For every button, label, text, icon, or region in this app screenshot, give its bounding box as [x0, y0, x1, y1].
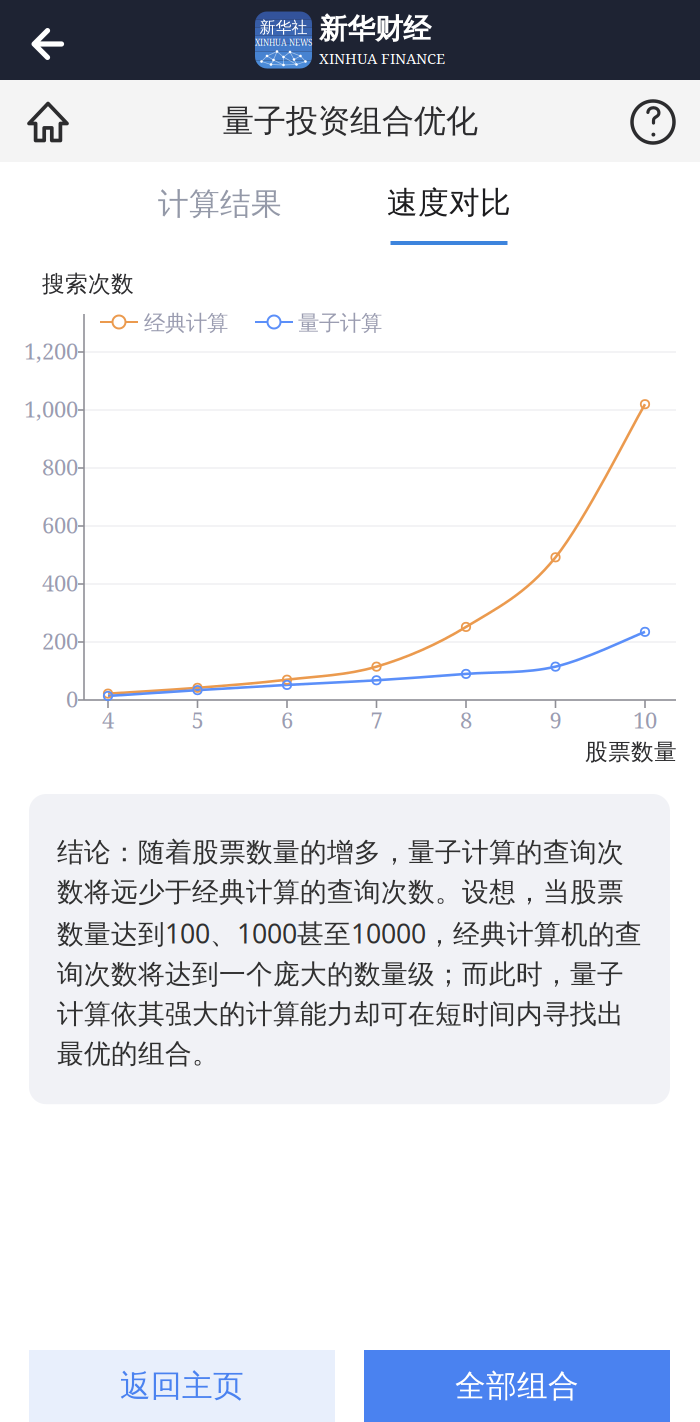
- button[interactable]: 速度对比: [334, 162, 564, 262]
- staticText: 7: [370, 705, 382, 735]
- button[interactable]: 返回主页: [29, 1350, 335, 1422]
- staticText: 600: [42, 510, 78, 540]
- button[interactable]: Help: [604, 80, 700, 162]
- staticText: 全部组合: [455, 1367, 579, 1405]
- staticText: 股票数量: [585, 738, 677, 766]
- staticText: 量子计算: [298, 310, 382, 336]
- staticText: XINHUA FINANCE: [319, 48, 445, 68]
- staticText: 1,000: [24, 394, 78, 424]
- staticText: 计算结果: [158, 185, 282, 223]
- button[interactable]: 全部组合: [364, 1350, 670, 1422]
- button[interactable]: Back: [0, 0, 96, 80]
- staticText: 新华社: [259, 17, 307, 37]
- staticText: 1,200: [24, 336, 78, 366]
- staticText: 400: [42, 568, 78, 598]
- staticText: 经典计算: [144, 310, 228, 336]
- staticText: 800: [42, 452, 78, 482]
- staticText: XINHUA NEWS: [255, 37, 312, 48]
- staticText: 速度对比: [387, 184, 511, 222]
- staticText: 0: [66, 684, 78, 714]
- staticText: 8: [460, 705, 472, 735]
- staticText: 5: [191, 705, 203, 735]
- staticText: 新华财经: [319, 12, 431, 46]
- button[interactable]: 计算结果: [105, 162, 335, 262]
- staticText: 9: [549, 705, 561, 735]
- staticText: 6: [281, 705, 293, 735]
- button[interactable]: Home: [0, 80, 96, 162]
- staticText: 10: [633, 705, 657, 735]
- staticText: 返回主页: [120, 1367, 244, 1405]
- staticText: 结论：随着股票数量的增多，量子计算的查询次数将远少于经典计算的查询次数。设想，当…: [57, 836, 642, 1070]
- staticText: 200: [42, 626, 78, 656]
- staticText: 量子投资组合优化: [222, 101, 478, 141]
- staticText: 4: [102, 705, 114, 735]
- staticText: 搜索次数: [42, 270, 134, 298]
